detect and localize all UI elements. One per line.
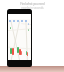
- button[interactable]: Place marker: [26, 51, 27, 55]
- button[interactable]: Place marker: [27, 52, 28, 56]
- button[interactable]: Place marker: [28, 29, 29, 31]
- button[interactable]: Place marker: [12, 48, 14, 55]
- button[interactable]: Place marker: [28, 23, 29, 25]
- staticText: nearby in seconds: [21, 6, 44, 10]
- button[interactable]: Place marker: [19, 49, 21, 55]
- button[interactable]: Place marker: [17, 47, 19, 53]
- button[interactable]: Place marker: [10, 27, 11, 29]
- button[interactable]: Place marker: [10, 48, 12, 54]
- button[interactable]: Place marker: [20, 51, 22, 55]
- staticText: Find what you need: [20, 2, 45, 6]
